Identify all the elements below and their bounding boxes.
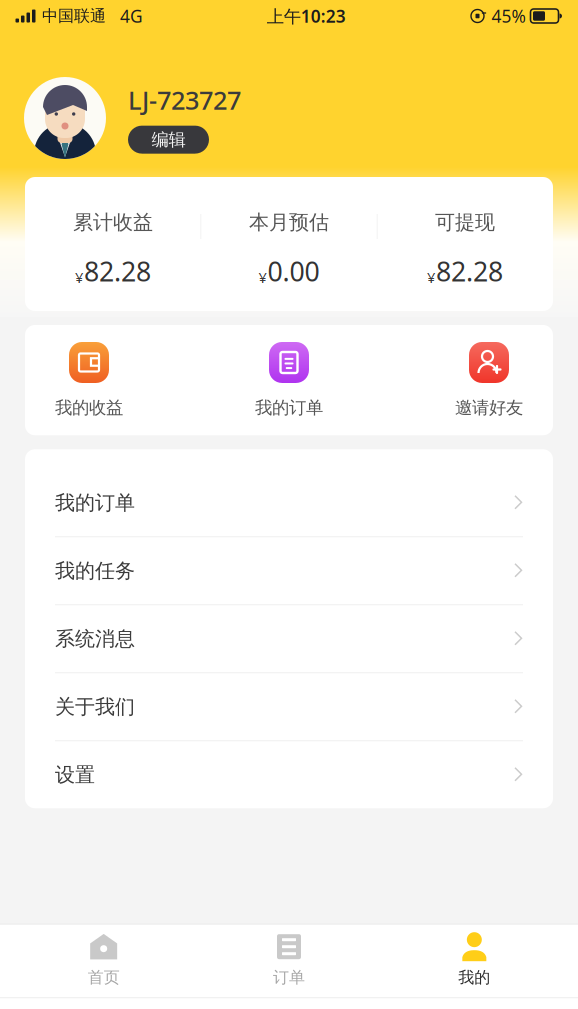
button[interactable]: 邀请好友 [455, 342, 523, 418]
staticText: 我的收益 [55, 397, 123, 418]
button[interactable]: 我的 [382, 925, 567, 997]
button[interactable]: 关于我们 [25, 673, 553, 740]
staticText: 邀请好友 [455, 397, 523, 418]
staticText: 系统消息 [55, 626, 135, 651]
staticText: 我的任务 [55, 558, 135, 583]
button[interactable]: 编辑 [128, 126, 209, 154]
staticText: 可提现 [435, 210, 495, 235]
button[interactable]: 我的订单 [255, 342, 323, 418]
button[interactable]: 系统消息 [25, 605, 553, 672]
staticText: ¥ [75, 267, 83, 287]
staticText: 中国联通 [42, 6, 106, 26]
staticText: 关于我们 [55, 694, 135, 719]
button[interactable]: 设置 [25, 741, 553, 808]
staticText: ¥ [427, 267, 435, 287]
staticText: 0.00 [267, 254, 319, 289]
staticText: 82.28 [84, 254, 151, 289]
staticText: 我的 [458, 968, 490, 987]
staticText: 4G [120, 4, 143, 27]
button[interactable]: 我的收益 [55, 342, 123, 418]
button[interactable]: 首页 [11, 925, 196, 997]
staticText: 82.28 [436, 254, 503, 289]
staticText: 编辑 [151, 129, 185, 150]
staticText: LJ-723727 [128, 83, 241, 117]
staticText: ¥ [258, 267, 266, 287]
staticText: 本月预估 [249, 210, 329, 235]
staticText: 累计收益 [73, 210, 153, 235]
staticText: 订单 [273, 968, 305, 987]
staticText: 上午10:23 [267, 4, 346, 27]
staticText: 首页 [88, 968, 120, 987]
button[interactable]: 订单 [196, 925, 382, 997]
staticText: 我的订单 [55, 490, 135, 515]
button[interactable]: 我的订单 [25, 469, 553, 536]
staticText: 我的订单 [255, 397, 323, 418]
button[interactable]: 我的任务 [25, 537, 553, 604]
staticText: 45% [491, 4, 525, 27]
staticText: 设置 [55, 762, 95, 787]
